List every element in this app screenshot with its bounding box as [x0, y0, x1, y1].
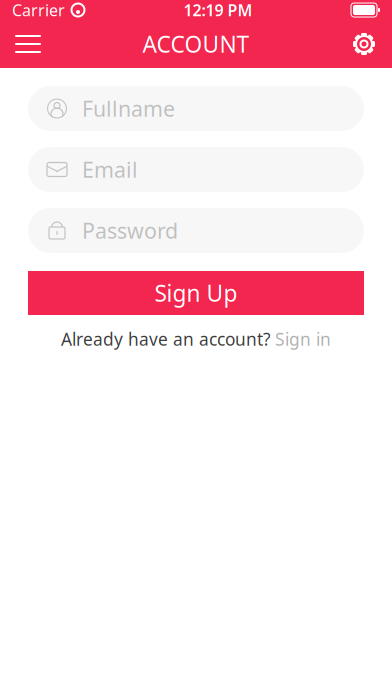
- button[interactable]: Sign Up: [28, 271, 364, 315]
- staticText: 12:19 PM: [183, 0, 252, 21]
- staticText: Sign Up: [154, 278, 237, 308]
- staticText: Fullname: [82, 94, 175, 123]
- button[interactable]: Menu: [4, 22, 52, 66]
- staticText: Carrier: [12, 0, 65, 21]
- staticText: Email: [82, 155, 138, 184]
- staticText: Already have an account?: [61, 327, 271, 350]
- staticText: Password: [82, 216, 178, 245]
- staticText: ACCOUNT: [142, 29, 249, 59]
- button[interactable]: Settings: [340, 22, 388, 66]
- staticText: Sign in: [275, 327, 331, 350]
- button[interactable]: Already have an account?: [28, 325, 364, 353]
